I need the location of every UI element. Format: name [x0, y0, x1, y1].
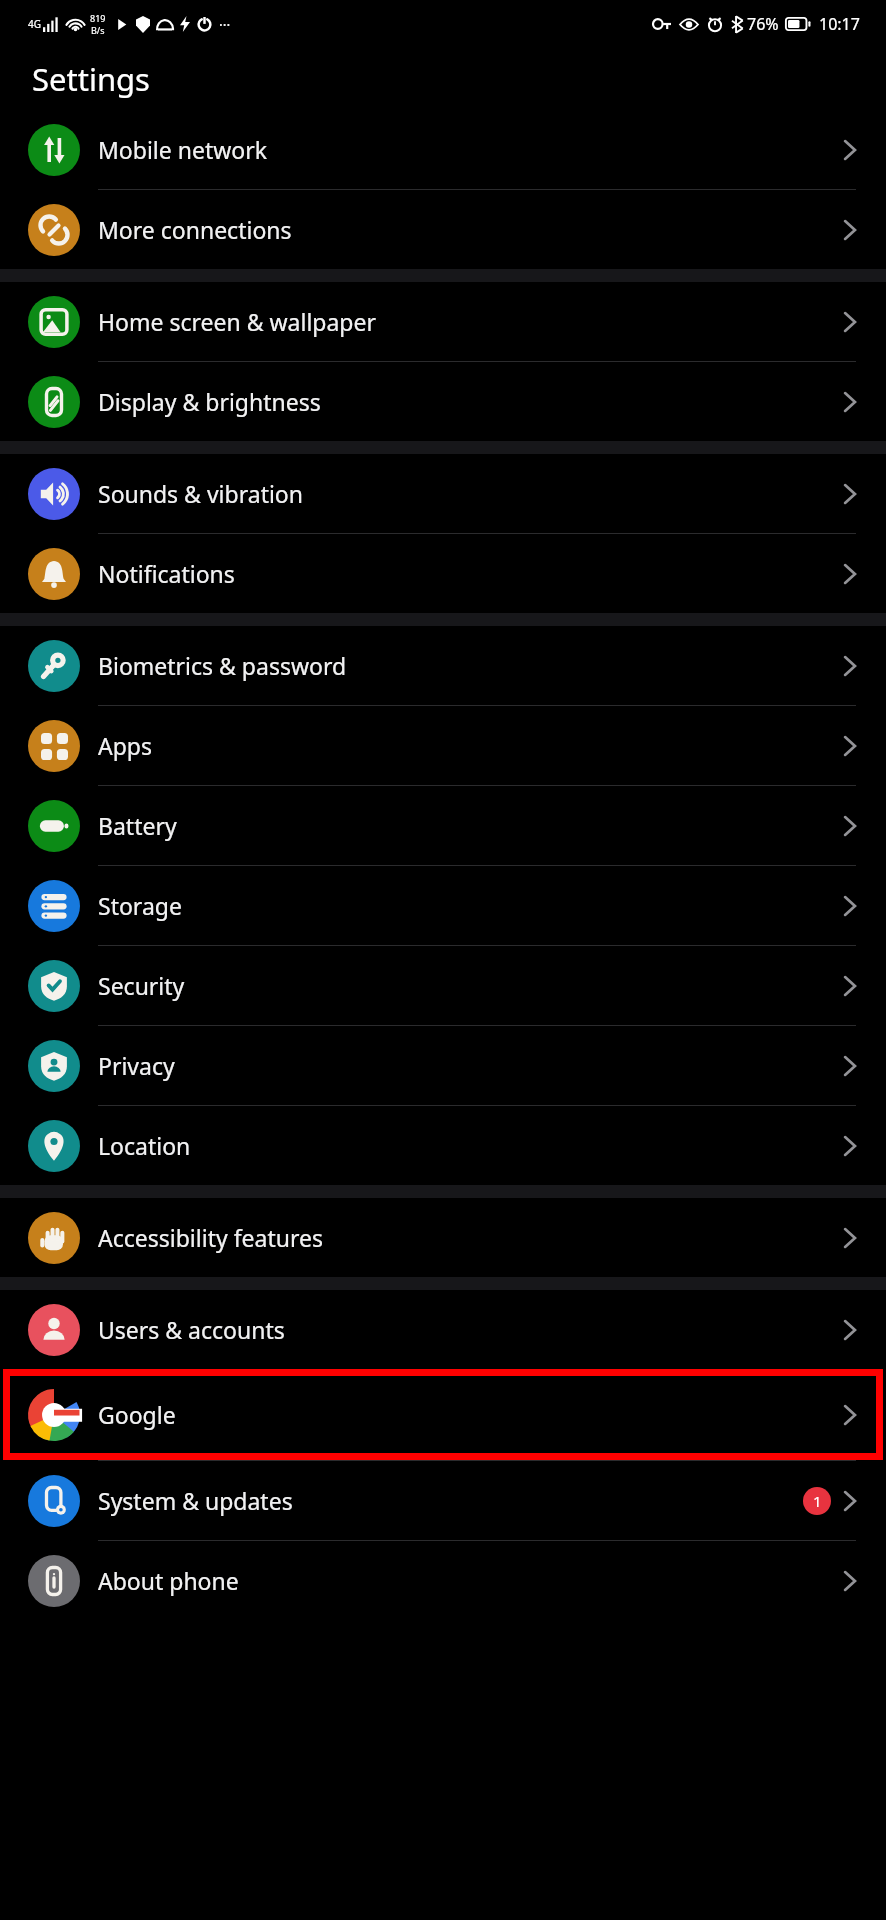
button[interactable]: Location	[0, 1106, 886, 1185]
button[interactable]: About phone	[0, 1541, 886, 1620]
button[interactable]: Notifications	[0, 534, 886, 613]
staticText: Home screen & wallpaper	[98, 306, 843, 337]
button[interactable]: Home screen & wallpaper	[0, 282, 886, 361]
staticText: Users & accounts	[98, 1314, 843, 1345]
staticText: System & updates	[98, 1485, 803, 1516]
staticText: ···	[219, 15, 231, 34]
staticText: Display & brightness	[98, 386, 843, 417]
button[interactable]: Biometrics & password	[0, 626, 886, 705]
staticText: Security	[98, 970, 843, 1001]
button[interactable]: Security	[0, 946, 886, 1025]
staticText: Sounds & vibration	[98, 478, 843, 509]
staticText: Storage	[98, 890, 843, 921]
staticText: Biometrics & password	[98, 650, 843, 681]
staticText: B/s	[91, 24, 105, 36]
button[interactable]: Battery	[0, 786, 886, 865]
button[interactable]: System & updates	[0, 1461, 886, 1540]
button[interactable]: Users & accounts	[0, 1290, 886, 1369]
staticText: Battery	[98, 810, 843, 841]
staticText: Settings	[32, 58, 150, 100]
button[interactable]: Apps	[0, 706, 886, 785]
button[interactable]: Accessibility features	[0, 1198, 886, 1277]
staticText: Mobile network	[98, 134, 843, 165]
staticText: 819	[90, 12, 106, 24]
button[interactable]: Storage	[0, 866, 886, 945]
button[interactable]: More connections	[0, 190, 886, 269]
staticText: 4G	[28, 17, 41, 31]
staticText: Notifications	[98, 558, 843, 589]
button[interactable]: Sounds & vibration	[0, 454, 886, 533]
staticText: About phone	[98, 1565, 843, 1596]
staticText: Google	[98, 1399, 843, 1430]
staticText: 10:17	[819, 13, 860, 35]
staticText: Accessibility features	[98, 1222, 843, 1253]
staticText: More connections	[98, 214, 843, 245]
button[interactable]: Google	[0, 1375, 886, 1454]
staticText: Privacy	[98, 1050, 843, 1081]
staticText: Apps	[98, 730, 843, 761]
button[interactable]: Mobile network	[0, 110, 886, 189]
button[interactable]: Privacy	[0, 1026, 886, 1105]
button[interactable]: Display & brightness	[0, 362, 886, 441]
staticText: 1	[813, 1491, 822, 1511]
staticText: Location	[98, 1130, 843, 1161]
staticText: 76%	[747, 13, 779, 35]
